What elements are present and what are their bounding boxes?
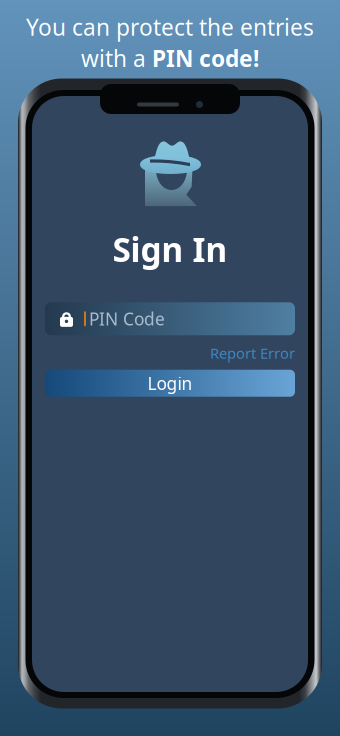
staticText: PIN Code	[89, 307, 165, 330]
button[interactable]: Login	[45, 370, 295, 397]
button[interactable]: Report Error	[210, 343, 295, 363]
staticText: You can protect the entries	[26, 12, 314, 42]
button[interactable]: PIN Code	[45, 302, 295, 335]
staticText: Login	[147, 372, 192, 395]
staticText: Report Error	[210, 343, 295, 363]
staticText: Sign In	[112, 227, 227, 271]
staticText: with a PIN code!	[81, 43, 259, 73]
